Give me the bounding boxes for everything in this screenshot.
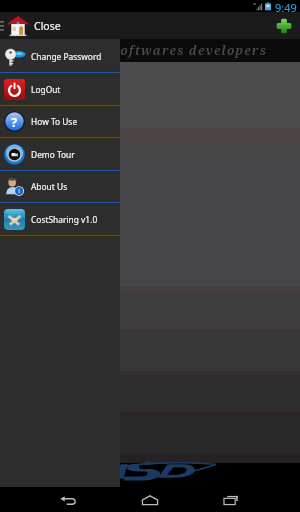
staticText: 9:49: [275, 0, 297, 12]
staticText: Demo Tour: [31, 149, 75, 160]
button[interactable]: About Us: [0, 171, 120, 204]
staticText: Close: [34, 19, 61, 33]
button[interactable]: Add: [270, 12, 297, 39]
button[interactable]: Demo Tour: [0, 139, 120, 172]
staticText: Change Password: [31, 51, 102, 62]
staticText: LogOut: [31, 84, 61, 95]
button[interactable]: Home: [135, 487, 165, 512]
button[interactable]: Close: [4, 12, 64, 39]
button[interactable]: Change Password: [0, 41, 120, 74]
button[interactable]: LogOut: [0, 74, 120, 107]
staticText: How To Use: [31, 116, 78, 127]
button[interactable]: Recents: [216, 487, 246, 512]
button[interactable]: Back: [53, 487, 83, 512]
button[interactable]: ?: [0, 106, 120, 139]
staticText: About Us: [31, 181, 68, 192]
staticText: CostSharing v1.0: [31, 214, 98, 225]
staticText: Softwares developers: [112, 42, 268, 58]
button[interactable]: CostSharing v1.0: [0, 204, 120, 237]
staticText: ?: [11, 113, 18, 131]
